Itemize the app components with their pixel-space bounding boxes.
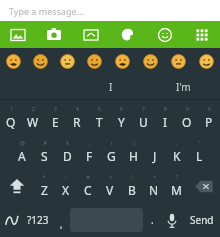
staticText: Q xyxy=(6,114,16,130)
button[interactable]: Apps xyxy=(183,21,220,48)
button[interactable]: Emoji xyxy=(146,21,183,48)
button[interactable]: 6 xyxy=(110,100,132,135)
staticText: 5 xyxy=(98,106,101,113)
staticText: 3 xyxy=(54,106,57,113)
button[interactable]: 9 xyxy=(176,100,198,135)
staticText: F xyxy=(86,148,93,164)
button[interactable]: Emoji xyxy=(108,48,136,75)
staticText: O xyxy=(182,114,192,130)
staticText: 1 xyxy=(10,106,13,113)
button[interactable]: = xyxy=(99,169,121,203)
staticText: , xyxy=(60,218,63,230)
staticText: I xyxy=(163,114,168,130)
staticText: 4 xyxy=(76,106,79,113)
staticText: M xyxy=(171,182,182,198)
staticText: J xyxy=(153,148,157,164)
button[interactable]: Voice input xyxy=(161,203,183,237)
staticText: ) xyxy=(133,140,135,147)
button[interactable]: : xyxy=(144,135,166,169)
button[interactable]: Backspace xyxy=(187,169,220,203)
button[interactable]: ) xyxy=(122,135,144,169)
staticText: U xyxy=(139,114,148,130)
staticText: S xyxy=(41,148,48,164)
staticText: 7 xyxy=(142,106,145,113)
button[interactable]: 0 xyxy=(198,100,220,135)
button[interactable]: I xyxy=(74,75,147,99)
staticText: X xyxy=(62,182,70,198)
button[interactable]: + xyxy=(143,169,165,203)
button[interactable]: 4 xyxy=(66,100,88,135)
button[interactable]: ; xyxy=(166,135,188,169)
staticText: 9 xyxy=(186,106,189,113)
button[interactable]: ?123 xyxy=(23,203,52,237)
staticText: H xyxy=(129,148,138,164)
staticText: ? xyxy=(175,174,178,181)
staticText: B xyxy=(128,182,136,198)
staticText: $ xyxy=(66,140,69,147)
staticText: " xyxy=(198,140,201,147)
button[interactable]: / xyxy=(121,169,143,203)
button[interactable]: 3 xyxy=(44,100,66,135)
staticText: 2 xyxy=(32,106,35,113)
button[interactable]: # xyxy=(77,169,99,203)
staticText: Y xyxy=(118,114,125,130)
button[interactable]: 8 xyxy=(154,100,176,135)
button[interactable]: ? xyxy=(165,169,187,203)
button[interactable]: . xyxy=(143,203,161,237)
staticText: = xyxy=(109,174,112,181)
staticText: W xyxy=(27,114,39,130)
button[interactable]: Send xyxy=(183,203,220,237)
staticText: ! xyxy=(65,174,67,181)
button[interactable]: ' xyxy=(52,203,70,237)
button[interactable]: " xyxy=(188,135,210,169)
button[interactable]: 5 xyxy=(88,100,110,135)
staticText: ; xyxy=(176,140,178,147)
staticText: _ xyxy=(88,140,91,147)
button[interactable]: Gallery xyxy=(0,21,36,48)
staticText: ' xyxy=(61,210,63,218)
staticText: 8 xyxy=(164,106,167,113)
staticText: + xyxy=(153,174,156,181)
staticText: Type a message... xyxy=(9,5,84,17)
button[interactable]: GIF xyxy=(72,21,109,48)
button[interactable]: @ xyxy=(10,135,33,169)
staticText: L xyxy=(196,148,203,164)
button[interactable]: Emoji xyxy=(54,48,81,75)
button[interactable]: Emoji xyxy=(192,48,220,75)
button[interactable]: ! xyxy=(55,169,77,203)
button[interactable]: 7 xyxy=(132,100,154,135)
staticText: D xyxy=(63,148,72,164)
staticText: Z xyxy=(41,182,48,198)
button[interactable]: I'm xyxy=(147,75,220,99)
staticText: Send xyxy=(190,213,214,227)
button[interactable]: * xyxy=(33,169,55,203)
staticText: A xyxy=(18,148,26,164)
staticText: R xyxy=(73,114,81,130)
button[interactable]: Emoji xyxy=(81,48,108,75)
button[interactable]: Emoji xyxy=(27,48,54,75)
staticText: # xyxy=(43,140,47,147)
button[interactable]: Glide typing xyxy=(0,203,23,237)
staticText: # xyxy=(86,174,90,181)
button[interactable]: 1 xyxy=(0,100,22,135)
button[interactable]: ( xyxy=(100,135,122,169)
staticText: K xyxy=(173,148,181,164)
staticText: / xyxy=(131,174,133,181)
button[interactable]: Emoji xyxy=(164,48,192,75)
button[interactable]: Shift xyxy=(0,169,33,203)
button[interactable]: Sticker xyxy=(109,21,146,48)
button[interactable]: Type a message... xyxy=(0,0,220,21)
button[interactable]: Camera xyxy=(36,21,72,48)
button[interactable]: # xyxy=(33,135,56,169)
staticText: . xyxy=(151,213,154,227)
staticText: ( xyxy=(111,140,113,147)
button[interactable]: Emoji xyxy=(136,48,164,75)
staticText: 0 xyxy=(208,106,211,113)
button[interactable]: 2 xyxy=(22,100,44,135)
staticText: 6 xyxy=(120,106,123,113)
button[interactable]: $ xyxy=(56,135,78,169)
button[interactable]: _ xyxy=(78,135,100,169)
button[interactable]: Emoji xyxy=(0,48,27,75)
